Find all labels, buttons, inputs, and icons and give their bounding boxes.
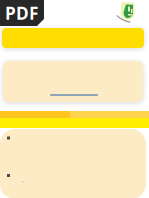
button[interactable]: PDF file type bbox=[0, 0, 44, 26]
staticText: PDF bbox=[5, 1, 39, 24]
